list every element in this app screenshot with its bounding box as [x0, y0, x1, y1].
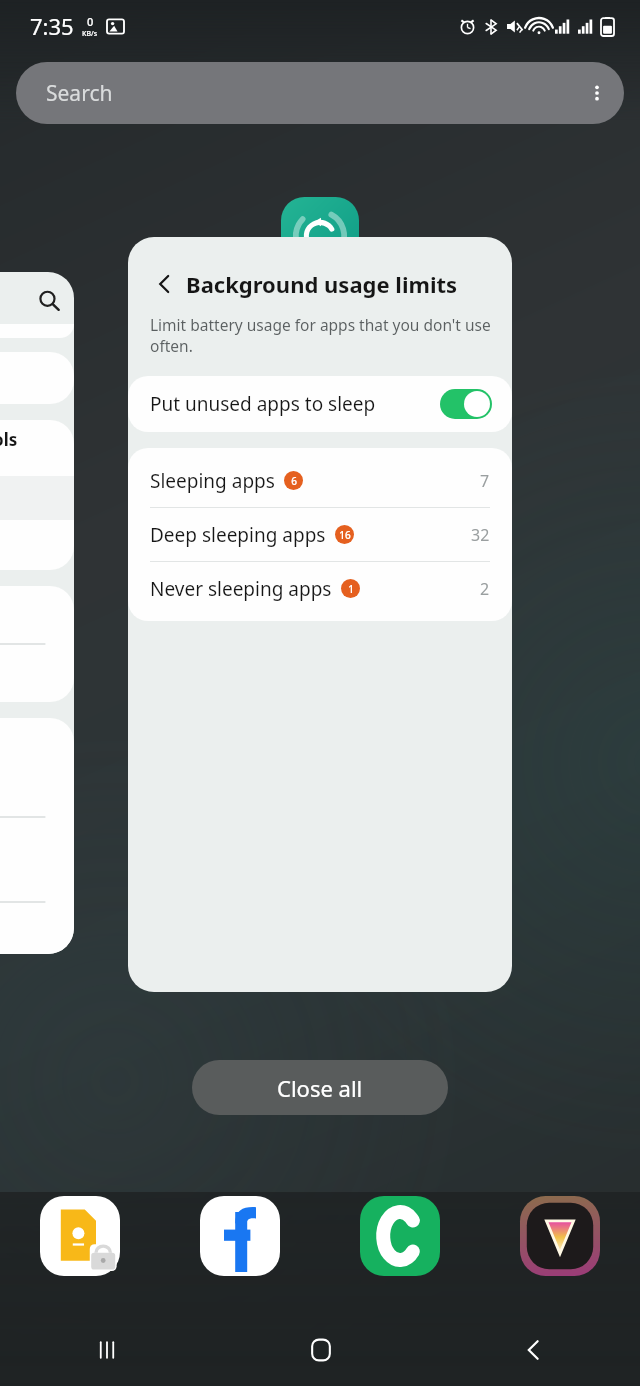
button[interactable]: More options	[570, 62, 624, 124]
staticText: Put unused apps to sleep	[150, 391, 376, 417]
staticText: Deep sleeping apps	[150, 522, 326, 548]
staticText: 0	[87, 14, 94, 29]
button[interactable]: Sleeping apps	[128, 454, 512, 508]
staticText: 1	[348, 582, 354, 596]
staticText: Close all	[277, 1073, 363, 1103]
button[interactable]: controls	[0, 272, 74, 954]
button[interactable]: Keep notes	[38, 1194, 122, 1278]
button[interactable]: Search	[16, 62, 624, 124]
staticText: 16	[339, 528, 351, 542]
button[interactable]: Navigate up	[148, 267, 182, 301]
button[interactable]: Never sleeping apps	[128, 562, 512, 615]
button[interactable]: Deep sleeping apps	[128, 508, 512, 562]
staticText: Never sleeping apps	[150, 576, 332, 602]
button[interactable]: Vanced	[518, 1194, 602, 1278]
button[interactable]: Facebook	[198, 1194, 282, 1278]
staticText: Sleeping apps	[150, 468, 275, 494]
staticText: KB/s	[82, 29, 98, 39]
staticText: 6	[291, 474, 297, 488]
staticText: Limit battery usage for apps that you do…	[150, 314, 498, 356]
staticText: Search	[46, 79, 113, 108]
button[interactable]: Home	[214, 1314, 427, 1386]
staticText: 7:35	[30, 11, 74, 41]
staticText: Background usage limits	[186, 269, 458, 299]
button[interactable]: Close all	[192, 1060, 448, 1115]
staticText: 32	[471, 524, 490, 546]
button[interactable]: Navigate up	[128, 237, 512, 992]
staticText: controls	[0, 428, 18, 451]
button[interactable]: Phone	[358, 1194, 442, 1278]
button[interactable]: Recent apps	[0, 1314, 214, 1386]
button[interactable]: Back	[427, 1314, 640, 1386]
staticText: 7	[480, 470, 490, 492]
button[interactable]: Put unused apps to sleep	[128, 376, 512, 432]
button[interactable]: Put unused apps to sleep, on	[440, 389, 492, 419]
staticText: 2	[480, 578, 490, 600]
